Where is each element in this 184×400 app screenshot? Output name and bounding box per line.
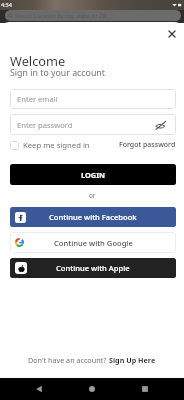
staticText: or <box>89 191 96 200</box>
button[interactable]: Forgot password <box>119 140 176 150</box>
button[interactable]: Show password <box>155 119 166 130</box>
button[interactable]: Close <box>163 25 180 42</box>
staticText: Continue with Apple <box>56 263 130 273</box>
staticText: Enter password <box>17 120 73 130</box>
staticText: Continue with Facebook <box>49 212 137 222</box>
button[interactable]: Continue with Facebook <box>10 207 176 227</box>
button[interactable]: Back <box>33 383 45 395</box>
button[interactable]: Keep me signed in <box>10 140 90 150</box>
button[interactable]: Continue with Apple <box>10 258 176 278</box>
staticText: LOGIN <box>81 170 106 180</box>
button[interactable]: Enter email <box>10 89 176 109</box>
staticText: Keep me signed in <box>23 140 90 150</box>
staticText: 4:34 <box>1 1 12 8</box>
button[interactable]: Home <box>86 383 98 395</box>
staticText: Continue with Google <box>54 238 133 248</box>
button[interactable]: Continue with Google <box>10 232 176 253</box>
staticText: Welcome <box>10 52 66 69</box>
staticText: Sign in to your account <box>10 67 105 79</box>
button[interactable]: LOGIN <box>10 164 176 185</box>
staticText: Enter email <box>17 94 58 104</box>
button[interactable]: Enter password <box>10 114 176 135</box>
staticText: Search Location by city, state, or ZIP <box>15 12 108 19</box>
staticText: Don't have an account? <box>28 355 109 365</box>
button[interactable]: Sign Up Here <box>109 355 156 365</box>
button[interactable]: Recent apps <box>139 383 151 395</box>
